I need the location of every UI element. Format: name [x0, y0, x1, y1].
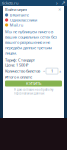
staticText: Цена: 1 500 ₽ [5, 62, 28, 68]
staticText: Я даю согласие на обработку персональных… [14, 88, 53, 95]
staticText: Тариф: Стандарт [5, 57, 35, 63]
staticText: ↗ [61, 0, 65, 6]
staticText: 1 [51, 68, 53, 74]
staticText: Итого к оплате [5, 74, 32, 80]
staticText: › [56, 0, 58, 7]
button[interactable]: ВКонтакте [5, 13, 62, 17]
staticText: КУПИТЬ [26, 81, 41, 86]
button[interactable]: Close [57, 7, 62, 12]
staticText: − [43, 68, 45, 74]
button[interactable]: КУПИТЬ [5, 81, 62, 87]
staticText: Одноклассники [10, 17, 37, 23]
staticText: Мы не публикуем ничего в ваших социальны… [5, 29, 57, 56]
button[interactable]: Одноклассники [5, 18, 62, 22]
button[interactable]: Mail.ru [5, 23, 62, 27]
staticText: tickets.ru [2, 0, 18, 6]
button[interactable]: Increase [58, 69, 62, 74]
button[interactable]: tickets.ru [2, 0, 18, 5]
staticText: ✕ [58, 7, 61, 12]
button[interactable]: Forward [55, 0, 59, 5]
staticText: + [59, 68, 61, 74]
staticText: Количество билетов [5, 68, 40, 74]
staticText: ВКонтакте [10, 12, 29, 18]
staticText: Войти через [5, 7, 27, 12]
button[interactable]: Decrease [42, 69, 46, 74]
button[interactable]: Open in app [61, 0, 65, 5]
staticText: Mail.ru [10, 22, 23, 28]
